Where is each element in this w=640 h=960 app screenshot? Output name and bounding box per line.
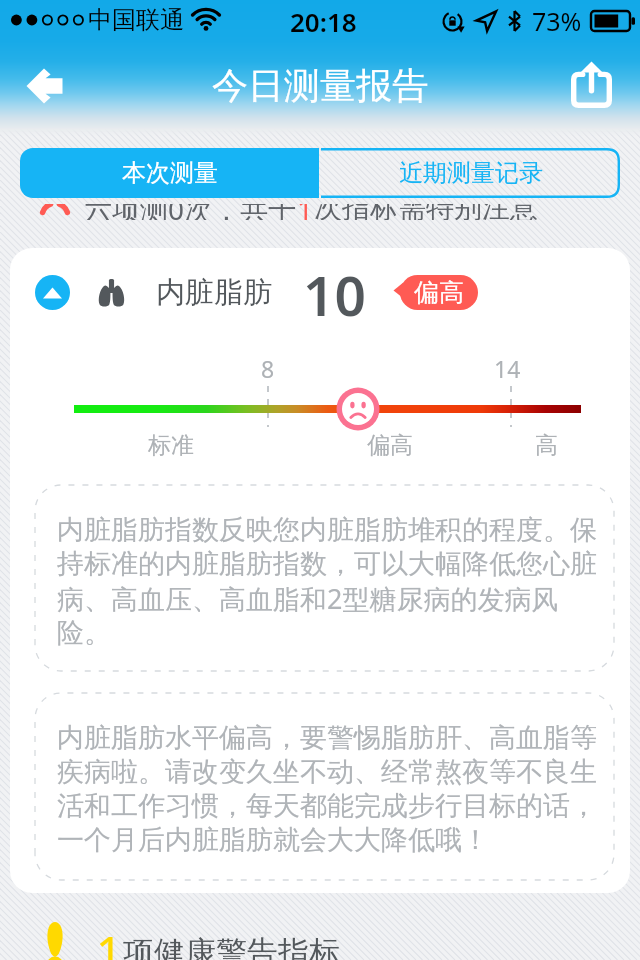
staticText: 中国联通 — [88, 5, 184, 35]
staticText: 14 — [494, 353, 521, 384]
staticText: 内脏脂肪 — [156, 274, 272, 311]
button[interactable]: Back — [14, 56, 74, 116]
staticText: 内脏脂肪水平偏高，要警惕脂肪肝、高血脂等疾病啦。请改变久坐不动、经常熬夜等不良生… — [57, 721, 604, 857]
staticText: 73% — [532, 4, 582, 38]
button[interactable]: Collapse section — [35, 275, 70, 310]
staticText: 内脏脂肪指数反映您内脏脂肪堆积的程度。保持标准的内脏脂肪指数，可以大幅降低您心脏… — [57, 513, 604, 650]
staticText: 近期测量记录 — [399, 158, 543, 188]
button[interactable]: Share — [563, 56, 619, 112]
staticText: 今日测量报告 — [212, 63, 428, 108]
staticText: 偏高 — [414, 277, 464, 308]
staticText: 8 — [261, 353, 275, 384]
staticText: 次指标需特别注意 — [314, 204, 538, 220]
staticText: 六项测0次，共十 — [84, 204, 297, 220]
button[interactable]: 本次测量 — [20, 148, 319, 198]
staticText: 偏高 — [367, 431, 413, 460]
staticText: 1 — [96, 921, 123, 960]
staticText: 10 — [303, 257, 366, 317]
staticText: 1 — [297, 204, 314, 220]
staticText: 项健康警告指标 — [123, 933, 340, 960]
staticText: 标准 — [148, 431, 194, 460]
staticText: 高 — [535, 431, 558, 460]
button[interactable]: 近期测量记录 — [321, 148, 620, 198]
staticText: 本次测量 — [122, 158, 218, 188]
staticText: 20:18 — [290, 4, 357, 39]
